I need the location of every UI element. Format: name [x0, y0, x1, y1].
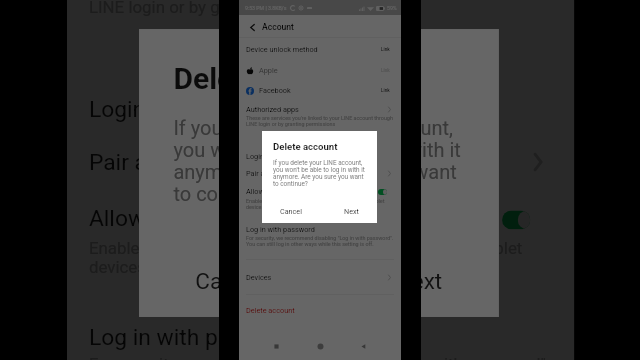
button[interactable]: Pair a device: [67, 135, 574, 189]
button[interactable]: Allow device sync: [67, 192, 574, 245]
button[interactable]: Login and security: [239, 148, 401, 165]
staticText: 9:53 PM | 3.8KB/s: [245, 5, 287, 11]
staticText: Facebook: [259, 86, 291, 95]
staticText: Cancel: [195, 267, 264, 292]
button[interactable]: Allow device sync: [239, 183, 401, 200]
staticText: 59%: [387, 5, 397, 11]
button[interactable]: Log in with password: [67, 311, 574, 360]
staticText: Apple: [259, 66, 278, 75]
button[interactable]: Log in with password: [239, 221, 401, 238]
staticText: Delete account: [273, 141, 338, 152]
button[interactable]: Cancel: [167, 261, 292, 298]
staticText: Enable this setting to automatically syn…: [246, 198, 396, 211]
staticText: Authorized apps: [246, 105, 299, 114]
staticText: Pair a device: [246, 169, 288, 178]
button[interactable]: Back: [239, 17, 401, 37]
staticText: These are services you're linked to your…: [89, 0, 558, 20]
staticText: Pair a device: [89, 148, 220, 176]
staticText: Delete account: [173, 60, 377, 95]
button[interactable]: Login and security: [67, 82, 574, 135]
staticText: For security, we recommend disabling "Lo…: [89, 355, 558, 360]
button[interactable]: Authorized apps: [239, 101, 401, 118]
button[interactable]: Next: [367, 261, 471, 298]
staticText: Allow device sync: [89, 204, 270, 232]
staticText: Log in with password: [89, 323, 305, 351]
button[interactable]: Pair a device: [239, 165, 401, 182]
button[interactable]: Back: [357, 340, 370, 353]
staticText: Next: [344, 207, 359, 215]
staticText: Login and security: [246, 152, 306, 161]
button[interactable]: Home: [314, 340, 327, 353]
staticText: Next: [396, 267, 443, 292]
button[interactable]: Next: [335, 205, 368, 217]
other: Back: [247, 22, 258, 33]
staticText: Device unlock method: [246, 45, 318, 54]
button[interactable]: Cancel: [271, 205, 311, 217]
button[interactable]: Toggle Allow device sync: [378, 189, 387, 195]
staticText: Cancel: [280, 207, 302, 215]
staticText: Link: [381, 88, 390, 93]
button[interactable]: Facebook: [239, 82, 401, 99]
staticText: Delete account: [246, 306, 295, 315]
staticText: If you delete your LINE account, you won…: [173, 117, 468, 204]
button[interactable]: Devices: [239, 269, 401, 286]
staticText: Devices: [246, 273, 272, 282]
staticText: For security, we recommend disabling "Lo…: [246, 235, 396, 248]
staticText: Login and security: [89, 95, 277, 123]
staticText: Link: [381, 47, 390, 52]
button[interactable]: Device unlock method: [239, 41, 401, 58]
staticText: Log in with password: [246, 225, 315, 234]
staticText: Link: [381, 68, 390, 73]
staticText: Allow device sync: [246, 187, 304, 196]
staticText: Enable this setting to automatically syn…: [89, 239, 558, 279]
staticText: If you delete your LINE account, you won…: [273, 159, 367, 187]
staticText: These are services you're linked to your…: [246, 115, 396, 128]
button[interactable]: Recent apps: [270, 340, 283, 353]
button[interactable]: Delete account: [239, 302, 401, 319]
button[interactable]: Toggle Allow device sync: [502, 211, 530, 229]
staticText: Account: [262, 22, 294, 32]
button[interactable]: Apple: [239, 62, 401, 79]
